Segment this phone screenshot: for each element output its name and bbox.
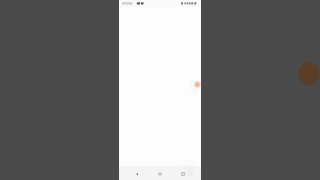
button[interactable]: Recent apps <box>177 166 189 180</box>
button[interactable]: Back <box>131 166 143 180</box>
button[interactable]: Home <box>154 166 166 180</box>
button[interactable]: Action button <box>193 80 202 89</box>
